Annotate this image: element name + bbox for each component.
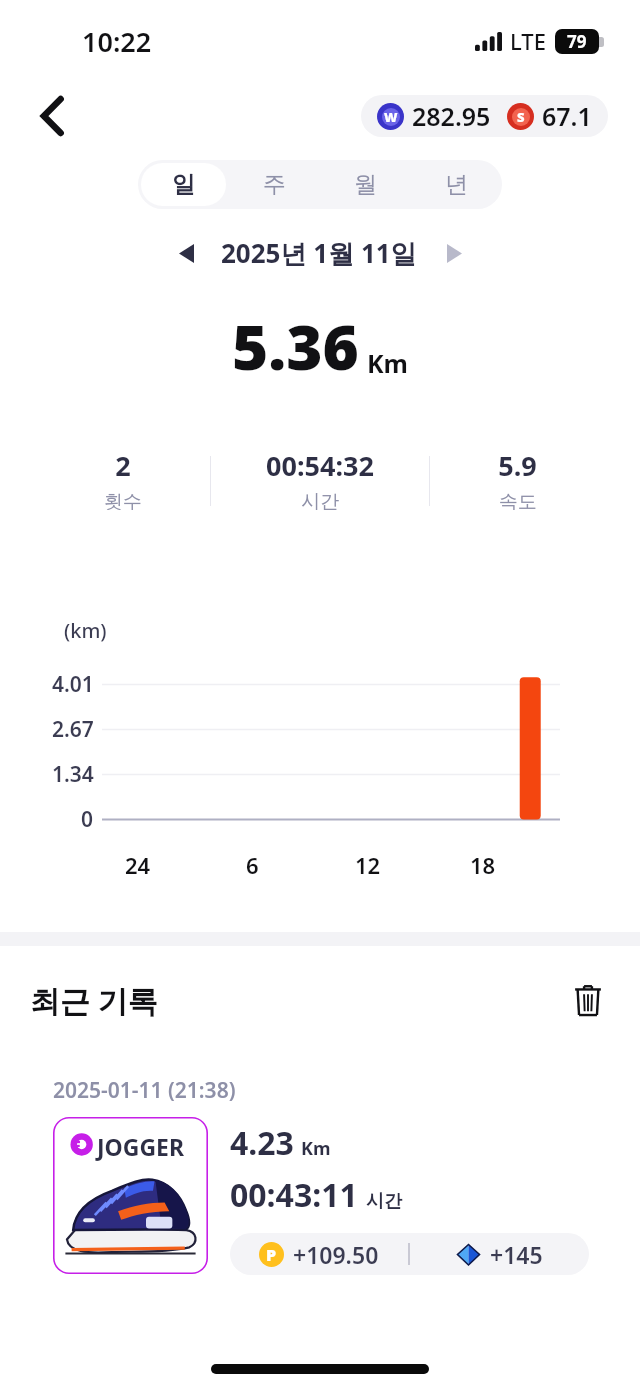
staticText: P — [266, 1244, 277, 1266]
staticText: 12 — [355, 850, 381, 880]
staticText: 5.9 — [498, 447, 537, 484]
staticText: 2 — [115, 447, 131, 484]
staticText: 2025년 1월 11일 — [221, 235, 417, 271]
staticText: LTE — [510, 26, 546, 56]
button[interactable]: 월 — [323, 163, 408, 206]
staticText: 최근 기록 — [30, 980, 158, 1021]
button[interactable]: W — [361, 95, 608, 137]
button[interactable]: Previous day — [165, 232, 207, 274]
button[interactable]: 주 — [232, 163, 317, 206]
staticText: 시간 — [301, 490, 339, 514]
staticText: S — [517, 108, 525, 126]
staticText: 2.67 — [52, 715, 94, 744]
staticText: 일 — [172, 170, 195, 199]
button[interactable]: Delete records — [564, 976, 612, 1024]
staticText: 속도 — [499, 490, 537, 514]
button[interactable]: Next day — [433, 232, 475, 274]
staticText: 10:22 — [82, 23, 152, 60]
staticText: 횟수 — [104, 490, 142, 514]
button[interactable]: Back — [28, 91, 78, 141]
staticText: 0 — [81, 805, 94, 834]
staticText: 2025-01-11 (21:38) — [53, 1076, 236, 1105]
staticText: +109.50 — [293, 1239, 379, 1270]
staticText: 6 — [246, 850, 259, 880]
button[interactable]: 2025-01-11 (21:38) — [35, 1058, 605, 1295]
button[interactable]: P — [230, 1233, 589, 1275]
staticText: 4.23 — [230, 1121, 294, 1165]
staticText: 79 — [567, 30, 587, 53]
staticText: 주 — [263, 170, 286, 199]
staticText: E — [73, 1136, 81, 1152]
button[interactable]: 일 — [141, 163, 226, 206]
staticText: 년 — [445, 170, 468, 199]
button[interactable]: 5.9 — [430, 447, 605, 514]
button[interactable]: 2 — [35, 447, 210, 514]
button[interactable]: 00:54:32 — [211, 447, 429, 514]
staticText: W — [384, 108, 398, 126]
staticText: 월 — [354, 170, 377, 199]
staticText: 24 — [125, 850, 151, 880]
staticText: Km — [301, 1136, 331, 1161]
staticText: +145 — [490, 1239, 543, 1270]
staticText: 1.34 — [52, 760, 94, 789]
staticText: 00:43:11 — [230, 1173, 358, 1217]
staticText: 시간 — [366, 1190, 402, 1213]
staticText: 67.1 — [542, 99, 592, 133]
staticText: 5.36 — [232, 304, 359, 388]
staticText: JOGGER — [97, 1131, 185, 1162]
button[interactable]: 년 — [414, 163, 499, 206]
staticText: (km) — [64, 617, 107, 644]
staticText: Km — [367, 346, 408, 380]
staticText: 18 — [470, 850, 496, 880]
staticText: 4.01 — [52, 670, 94, 699]
staticText: 00:54:32 — [266, 447, 374, 484]
staticText: 282.95 — [412, 99, 491, 133]
